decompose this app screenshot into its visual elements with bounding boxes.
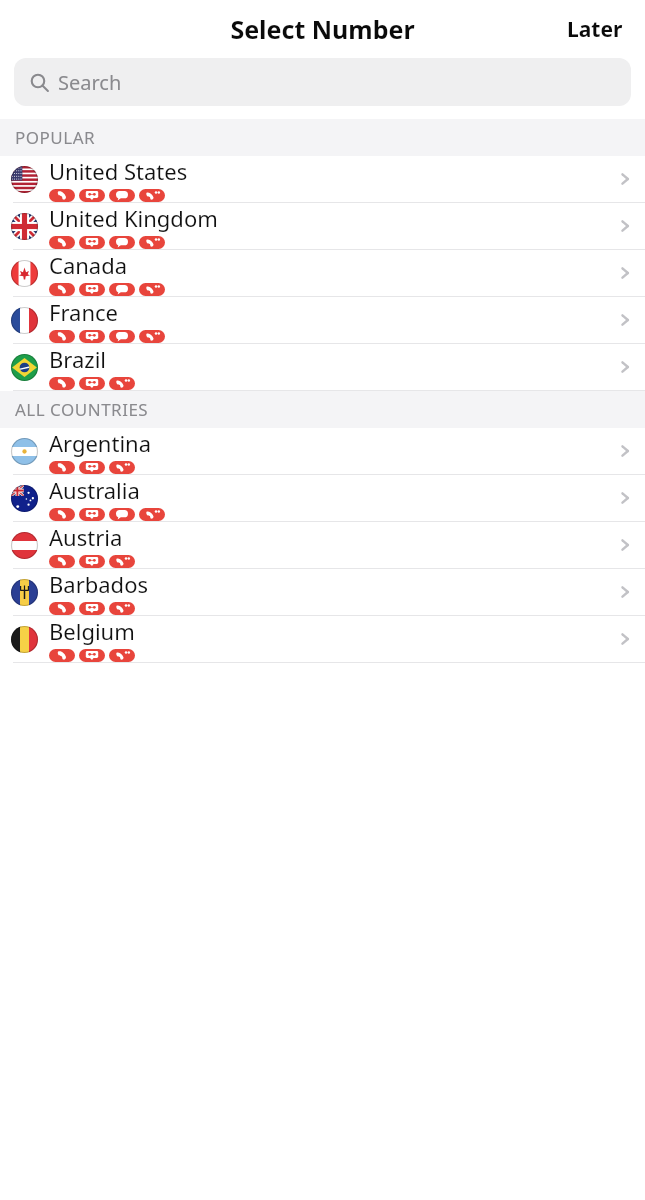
button[interactable]: CALL	[49, 236, 75, 249]
button[interactable]: CALL	[49, 283, 75, 296]
staticText: France	[49, 297, 118, 327]
button[interactable]: United States	[0, 156, 645, 203]
button[interactable]: Argentina	[0, 428, 645, 475]
staticText: Search	[58, 69, 122, 96]
other: Open France	[605, 297, 645, 343]
other: Open Austria	[605, 522, 645, 568]
button[interactable]: United Kingdom	[0, 203, 645, 250]
button[interactable]: Search	[14, 58, 631, 106]
staticText: Austria	[49, 522, 123, 552]
staticText: Argentina	[49, 428, 152, 458]
other: Open Brazil	[605, 344, 645, 390]
button[interactable]: Canada	[0, 250, 645, 297]
button[interactable]: VOICEMAIL	[79, 602, 105, 615]
button[interactable]: CALL	[49, 461, 75, 474]
button[interactable]: VOICEMAIL	[79, 508, 105, 521]
staticText: United States	[49, 156, 188, 186]
button[interactable]: VOICEMAIL	[79, 330, 105, 343]
button[interactable]: SMS	[109, 330, 135, 343]
staticText: Later	[567, 15, 623, 44]
button[interactable]: VOICEMAIL	[79, 377, 105, 390]
staticText: ALL COUNTRIES	[15, 398, 149, 421]
button[interactable]: Australia	[0, 475, 645, 522]
button[interactable]: Austria	[0, 522, 645, 569]
button[interactable]: CALL	[49, 602, 75, 615]
button[interactable]: SMS	[109, 283, 135, 296]
other: Open Barbados	[605, 569, 645, 615]
staticText: Canada	[49, 250, 128, 280]
button[interactable]: CALL_VM	[109, 461, 135, 474]
other: Open Australia	[605, 475, 645, 521]
other: Open United Kingdom	[605, 203, 645, 249]
button[interactable]: CALL_VM	[109, 602, 135, 615]
button[interactable]: CALL_VM	[139, 508, 165, 521]
staticText: Australia	[49, 475, 140, 505]
button[interactable]: CALL	[49, 189, 75, 202]
button[interactable]: CALL	[49, 508, 75, 521]
other: Open United States	[605, 156, 645, 202]
button[interactable]: Barbados	[0, 569, 645, 616]
other: Open Argentina	[605, 428, 645, 474]
button[interactable]: CALL_VM	[109, 649, 135, 662]
button[interactable]: CALL_VM	[109, 377, 135, 390]
button[interactable]: VOICEMAIL	[79, 461, 105, 474]
button[interactable]: CALL	[49, 377, 75, 390]
button[interactable]: CALL_VM	[139, 189, 165, 202]
staticText: Select Number	[230, 12, 415, 46]
other: Open Canada	[605, 250, 645, 296]
button[interactable]: SMS	[109, 236, 135, 249]
button[interactable]: VOICEMAIL	[79, 649, 105, 662]
button[interactable]: VOICEMAIL	[79, 236, 105, 249]
button[interactable]: CALL	[49, 649, 75, 662]
button[interactable]: France	[0, 297, 645, 344]
button[interactable]: CALL_VM	[109, 555, 135, 568]
button[interactable]: CALL_VM	[139, 236, 165, 249]
button[interactable]: Belgium	[0, 616, 645, 663]
staticText: Barbados	[49, 569, 148, 599]
button[interactable]: Brazil	[0, 344, 645, 391]
button[interactable]: CALL_VM	[139, 330, 165, 343]
staticText: United Kingdom	[49, 203, 218, 233]
button[interactable]: VOICEMAIL	[79, 555, 105, 568]
staticText: Brazil	[49, 344, 106, 374]
button[interactable]: VOICEMAIL	[79, 189, 105, 202]
button[interactable]: CALL_VM	[139, 283, 165, 296]
staticText: Belgium	[49, 616, 135, 646]
button[interactable]: CALL	[49, 555, 75, 568]
button[interactable]: SMS	[109, 508, 135, 521]
other: Open Belgium	[605, 616, 645, 662]
button[interactable]: CALL	[49, 330, 75, 343]
staticText: POPULAR	[15, 126, 96, 149]
button[interactable]: SMS	[109, 189, 135, 202]
button[interactable]: Later	[559, 9, 631, 50]
button[interactable]: VOICEMAIL	[79, 283, 105, 296]
